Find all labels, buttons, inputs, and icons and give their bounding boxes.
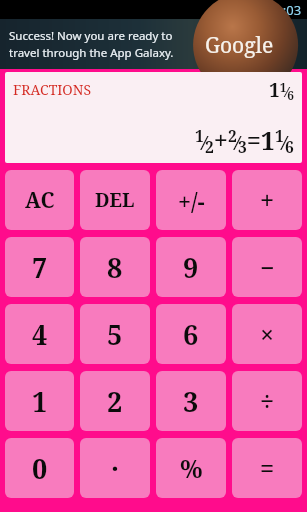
button[interactable]: = bbox=[232, 438, 302, 498]
button[interactable]: +/- bbox=[156, 170, 226, 230]
button[interactable]: 5 bbox=[80, 304, 150, 364]
staticText: 11:03 bbox=[268, 1, 302, 19]
button[interactable]: DEL bbox=[80, 170, 150, 230]
staticText: 8 bbox=[107, 249, 123, 286]
staticText: 3G bbox=[229, 5, 239, 15]
staticText: 9 bbox=[183, 249, 199, 286]
button[interactable]: 1 bbox=[5, 371, 74, 431]
button[interactable]: + bbox=[232, 170, 302, 230]
button[interactable]: ÷ bbox=[232, 371, 302, 431]
staticText: = bbox=[260, 451, 275, 485]
button[interactable]: 4 bbox=[5, 304, 74, 364]
staticText: + bbox=[260, 183, 275, 217]
staticText: +/- bbox=[178, 185, 205, 216]
staticText: 7 bbox=[32, 249, 48, 286]
button[interactable]: 2 bbox=[80, 371, 150, 431]
staticText: travel through the App Galaxy. bbox=[9, 45, 174, 61]
staticText: 1⁄2+2⁄3=11⁄6 bbox=[195, 123, 294, 158]
staticText: DEL bbox=[95, 187, 135, 213]
staticText: − bbox=[260, 250, 275, 284]
staticText: 3 bbox=[183, 383, 199, 420]
button[interactable]: 7 bbox=[5, 237, 74, 297]
staticText: AC bbox=[25, 186, 55, 215]
staticText: 1 bbox=[32, 383, 48, 420]
button[interactable]: 9 bbox=[156, 237, 226, 297]
button[interactable]: AC bbox=[5, 170, 74, 230]
button[interactable]: Advertisement bbox=[0, 19, 307, 69]
button[interactable]: · bbox=[80, 438, 150, 498]
staticText: · bbox=[111, 450, 119, 487]
staticText: × bbox=[260, 317, 275, 351]
staticText: 6 bbox=[183, 316, 199, 353]
button[interactable]: × bbox=[232, 304, 302, 364]
staticText: 2 bbox=[107, 383, 123, 420]
button[interactable]: 6 bbox=[156, 304, 226, 364]
staticText: 5 bbox=[107, 316, 123, 353]
staticText: Google bbox=[205, 31, 274, 60]
staticText: % bbox=[180, 451, 203, 485]
staticText: FRACTIONS bbox=[13, 80, 92, 99]
button[interactable]: % bbox=[156, 438, 226, 498]
button[interactable]: 0 bbox=[5, 438, 74, 498]
button[interactable]: − bbox=[232, 237, 302, 297]
button[interactable]: 3 bbox=[156, 371, 226, 431]
staticText: 4 bbox=[32, 316, 48, 353]
staticText: Success! Now you are ready to bbox=[9, 28, 173, 44]
button[interactable]: FRACTIONS bbox=[5, 72, 302, 163]
staticText: ÷ bbox=[260, 384, 275, 418]
staticText: 0 bbox=[32, 450, 48, 487]
staticText: 11⁄6 bbox=[269, 77, 294, 104]
button[interactable]: 8 bbox=[80, 237, 150, 297]
